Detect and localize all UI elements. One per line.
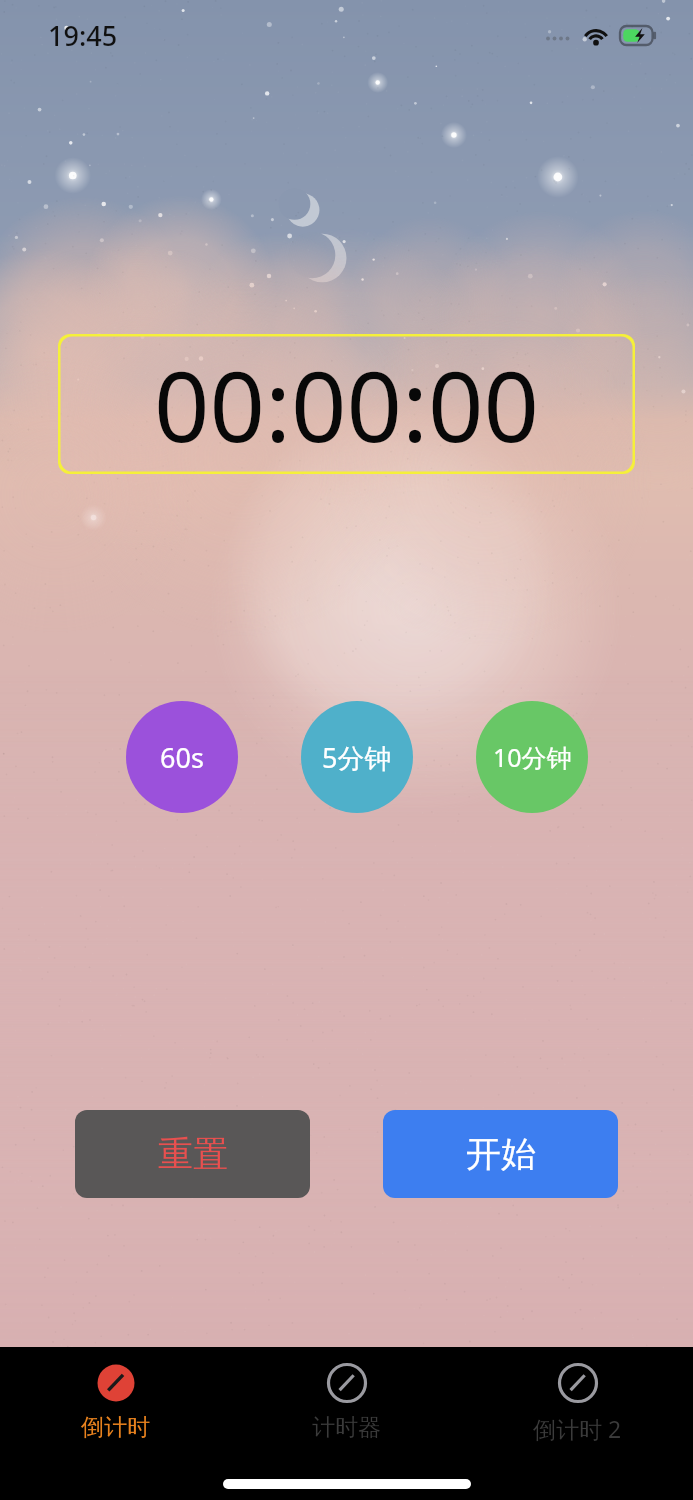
button[interactable]: 倒计时 2 (462, 1347, 693, 1457)
staticText: 开始 (466, 1132, 536, 1176)
staticText: 5分钟 (322, 739, 392, 776)
staticText: 19:45 (48, 17, 118, 54)
button[interactable]: 10分钟 (476, 701, 588, 813)
button[interactable]: 5分钟 (301, 701, 413, 813)
staticText: 00:00:00 (154, 338, 539, 470)
button[interactable]: 计时器 (231, 1347, 462, 1457)
button[interactable]: 60s (126, 701, 238, 813)
staticText: 倒计时 2 (533, 1413, 622, 1444)
staticText: 重置 (158, 1132, 228, 1176)
button[interactable]: 倒计时 (0, 1347, 231, 1457)
button[interactable]: 开始 (383, 1110, 618, 1198)
staticText: 计时器 (312, 1413, 381, 1442)
staticText: 10分钟 (493, 740, 572, 774)
staticText: 倒计时 (81, 1413, 150, 1442)
button[interactable]: 重置 (75, 1110, 310, 1198)
staticText: 60s (160, 739, 204, 776)
